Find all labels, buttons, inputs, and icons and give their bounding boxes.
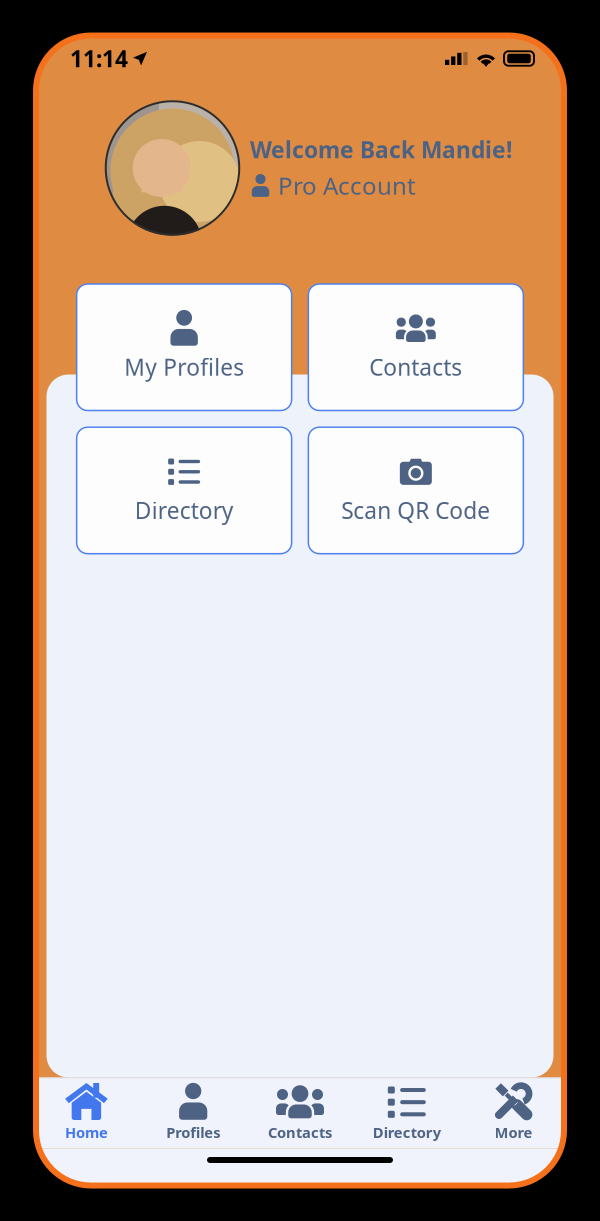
staticText: Directory xyxy=(135,495,234,525)
button[interactable]: Directory xyxy=(77,427,292,554)
button[interactable]: More xyxy=(460,1078,567,1148)
button[interactable]: Directory xyxy=(353,1078,460,1148)
staticText: More xyxy=(495,1122,533,1142)
button[interactable]: My Profiles xyxy=(77,284,292,410)
staticText: Pro Account xyxy=(278,170,416,201)
staticText: Directory xyxy=(373,1122,441,1142)
staticText: Contacts xyxy=(369,352,462,382)
staticText: Contacts xyxy=(268,1122,332,1142)
button[interactable]: Home xyxy=(33,1078,140,1148)
staticText: Profiles xyxy=(166,1122,220,1142)
staticText: 11:14 xyxy=(70,43,128,73)
staticText: Home xyxy=(65,1122,108,1142)
button[interactable]: Contacts xyxy=(308,284,523,410)
staticText: Welcome Back Mandie! xyxy=(250,134,512,165)
button[interactable]: Scan QR Code xyxy=(308,427,523,554)
button[interactable]: Profiles xyxy=(140,1078,247,1148)
staticText: My Profiles xyxy=(124,352,244,382)
staticText: Scan QR Code xyxy=(341,495,490,525)
button[interactable]: Contacts xyxy=(247,1078,353,1148)
